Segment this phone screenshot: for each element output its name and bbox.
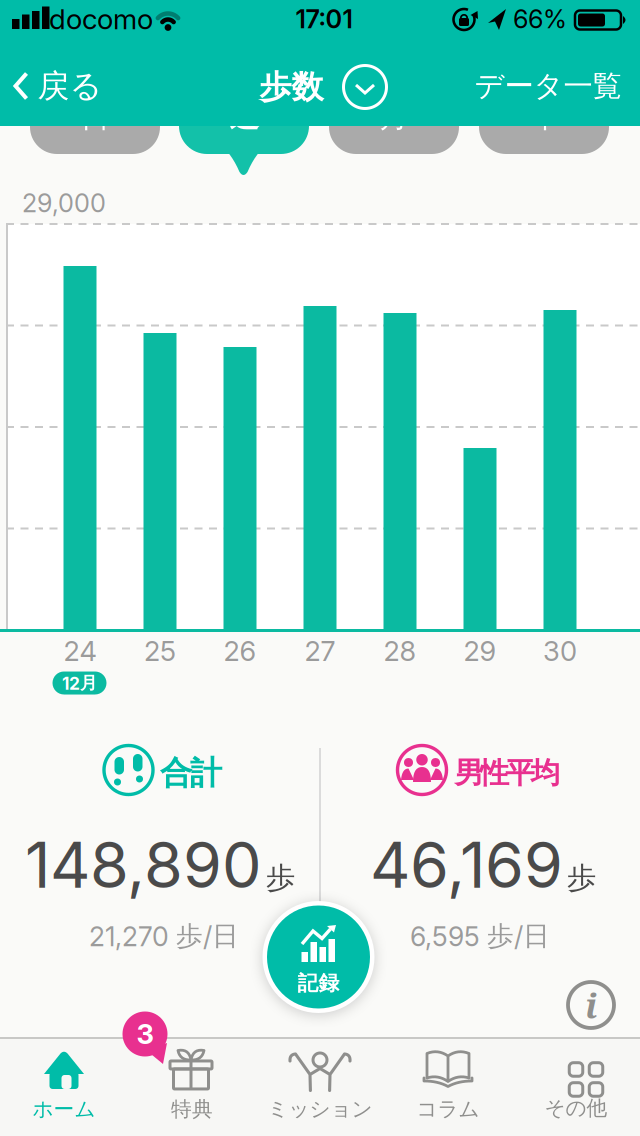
button[interactable]: 情報 [568,981,614,1029]
staticText: 合計 [160,753,222,793]
staticText: 25 [144,634,176,668]
staticText: 46,169 [370,827,563,903]
button[interactable]: 年 [479,96,609,154]
staticText: 28 [383,634,416,668]
button[interactable]: その他 [544,1051,607,1121]
staticText: 26 [223,634,256,668]
staticText: 歩 [266,860,295,897]
button[interactable]: 週 [179,96,309,154]
button[interactable]: 日 [30,96,160,154]
staticText: i [585,981,597,1029]
button[interactable]: 特典 [170,1050,214,1122]
staticText: 12月 [62,672,97,694]
staticText: 6,595 歩/日 [410,919,550,953]
staticText: 年 [529,98,558,135]
staticText: 27 [304,634,335,668]
button[interactable]: ホーム [32,1050,95,1122]
button[interactable]: コラム [416,1050,479,1122]
staticText: その他 [544,1095,607,1121]
staticText: 17:01 [295,4,352,34]
button[interactable]: 月 [329,96,459,154]
staticText: 月 [379,98,408,135]
staticText: コラム [416,1096,479,1122]
staticText: 日 [80,98,109,135]
staticText: 男性平均 [454,754,560,791]
button[interactable]: 戻る [13,66,102,106]
staticText: ホーム [32,1096,95,1122]
staticText: 週 [229,98,258,135]
staticText: 21,270 歩/日 [89,919,239,953]
button[interactable]: 歩数 [259,65,386,108]
staticText: 記録 [297,970,339,996]
staticText: docomo [49,2,153,36]
staticText: 戻る [37,66,102,106]
button[interactable]: 記録 [262,901,374,1013]
staticText: 24 [63,634,96,668]
button[interactable]: ミッション [267,1050,372,1122]
button[interactable]: データ一覧 [474,67,621,104]
staticText: 歩 [567,860,596,897]
staticText: 歩数 [259,67,323,107]
staticText: 29 [463,634,496,668]
staticText: 30 [543,634,577,668]
staticText: 148,890 [25,827,262,903]
staticText: データ一覧 [474,67,621,104]
staticText: 29,000 [22,188,106,218]
staticText: 66% [513,4,567,34]
staticText: ミッション [267,1096,372,1122]
staticText: 3 [136,1017,153,1051]
staticText: 特典 [171,1096,213,1122]
